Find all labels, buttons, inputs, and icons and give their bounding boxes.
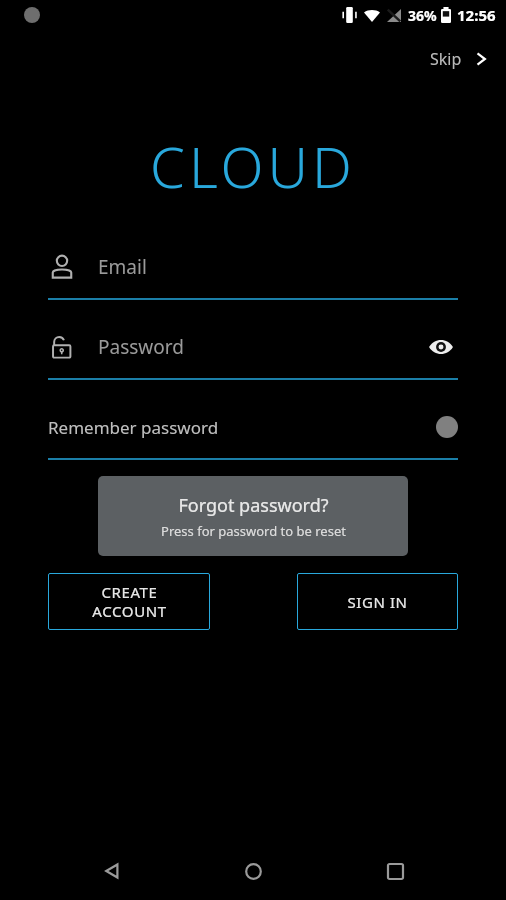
staticText: Forgot password? <box>178 493 329 518</box>
staticText: CLOUD <box>150 128 356 204</box>
staticText: Remember password <box>48 416 436 439</box>
button[interactable]: Email <box>48 236 458 298</box>
button[interactable]: Remember password <box>48 396 458 458</box>
staticText: 12:56 <box>457 5 496 25</box>
button[interactable]: Home <box>223 842 283 900</box>
staticText: Email <box>98 254 147 280</box>
button[interactable]: Skip <box>424 44 494 74</box>
button[interactable]: Back <box>82 842 142 900</box>
button[interactable]: CREATE ACCOUNT <box>48 573 210 630</box>
button[interactable]: Forgot password? <box>98 476 408 556</box>
staticText: CREATE ACCOUNT <box>92 582 167 621</box>
staticText: SIGN IN <box>347 592 408 612</box>
button[interactable]: Recent apps <box>365 842 425 900</box>
button[interactable]: SIGN IN <box>297 573 458 630</box>
staticText: Press for password to be reset <box>161 522 346 540</box>
staticText: 36% <box>408 6 437 25</box>
staticText: Password <box>98 334 424 360</box>
button[interactable]: Password <box>48 316 458 378</box>
button[interactable]: Show password <box>424 330 458 364</box>
staticText: Skip <box>430 48 462 70</box>
